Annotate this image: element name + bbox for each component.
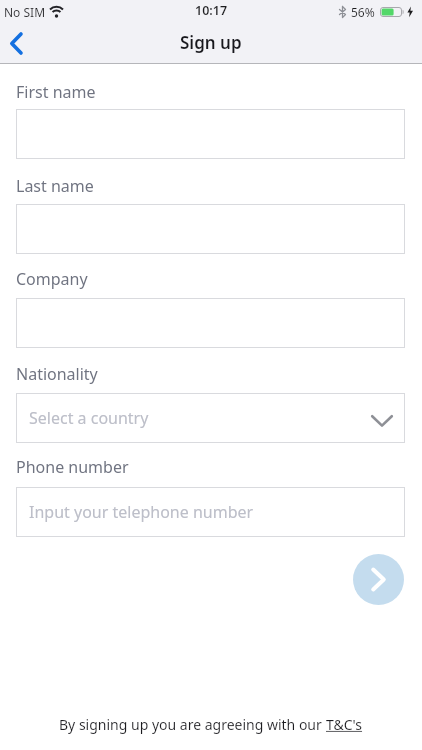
staticText: Company [16,268,88,290]
staticText: Select a country [29,407,149,429]
button[interactable]: T&C's [326,715,363,734]
button[interactable] [0,25,44,64]
staticText: No SIM [4,4,46,20]
button[interactable] [16,109,405,159]
staticText: Input your telephone number [29,501,254,523]
staticText: Nationality [16,363,98,385]
staticText: 10:17 [195,2,228,19]
staticText: First name [16,81,96,103]
staticText: By signing up you are agreeing with our [59,715,326,734]
staticText: Last name [16,175,94,197]
staticText: 56% [351,4,375,20]
staticText: Sign up [180,31,242,54]
button[interactable]: Input your telephone number [16,487,405,537]
button[interactable] [16,204,405,254]
button[interactable] [353,554,404,605]
button[interactable]: Select a country [16,393,405,443]
staticText: Phone number [16,456,129,478]
button[interactable] [16,298,405,348]
